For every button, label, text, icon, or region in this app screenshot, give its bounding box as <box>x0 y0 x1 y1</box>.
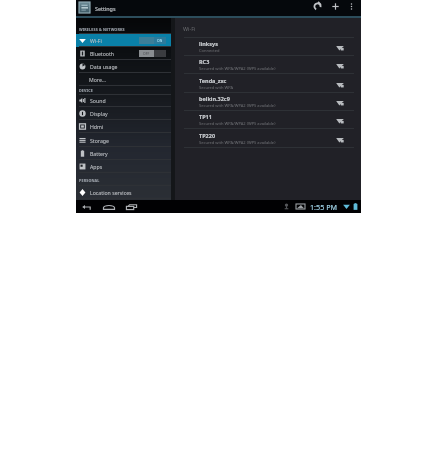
staticText: Settings <box>95 5 116 12</box>
staticText: Wi-Fi <box>90 37 102 44</box>
button[interactable]: Battery <box>76 147 171 160</box>
staticText: belkin.32c9 <box>199 95 230 102</box>
button[interactable]: More... <box>76 73 171 86</box>
staticText: Wi-Fi <box>183 25 196 32</box>
staticText: Location services <box>90 189 132 196</box>
button[interactable]: More options <box>345 0 358 13</box>
button[interactable]: belkin.32c9 <box>175 93 361 111</box>
button[interactable]: OFF <box>139 50 166 57</box>
button[interactable]: RC3 <box>175 56 361 74</box>
staticText: ON <box>157 38 163 43</box>
button[interactable]: Tenda_zxc <box>175 75 361 93</box>
staticText: Storage <box>90 137 109 144</box>
staticText: Tenda_zxc <box>199 77 227 84</box>
button[interactable]: Back <box>81 202 92 211</box>
staticText: Secured with WPA/WPA2 (WPS available) <box>199 103 276 109</box>
button[interactable]: Data usage <box>76 60 171 73</box>
button[interactable]: TP11 <box>175 111 361 129</box>
button[interactable]: Recent apps <box>125 202 138 211</box>
button[interactable]: Apps <box>76 160 171 173</box>
staticText: OFF <box>143 51 150 56</box>
staticText: linksys <box>199 40 218 47</box>
staticText: Sound <box>90 97 106 104</box>
staticText: Secured with WPA/WPA2 (WPS available) <box>199 140 276 146</box>
button[interactable]: Settings <box>79 2 90 13</box>
staticText: WIRELESS & NETWORKS <box>79 27 125 32</box>
staticText: Display <box>90 110 108 117</box>
button[interactable]: Display <box>76 107 171 120</box>
button[interactable]: Home <box>102 202 115 211</box>
staticText: PERSONAL <box>79 178 100 183</box>
staticText: Secured with WPA/WPA2 (WPS available) <box>199 121 276 127</box>
staticText: RC3 <box>199 58 210 65</box>
staticText: TP11 <box>199 113 212 120</box>
button[interactable]: Hdmi <box>76 120 171 133</box>
staticText: Secured with WPA <box>199 85 234 91</box>
button[interactable]: Bluetooth <box>76 47 171 60</box>
button[interactable]: Wi-Fi <box>76 34 171 47</box>
button[interactable]: Scan for networks <box>311 0 324 13</box>
staticText: 1:55 PM <box>310 202 337 212</box>
staticText: More... <box>89 76 106 83</box>
button[interactable]: Location services <box>76 186 171 199</box>
staticText: Bluetooth <box>90 50 115 57</box>
button[interactable]: linksys <box>175 38 361 56</box>
button[interactable]: Add network <box>329 0 342 13</box>
staticText: Apps <box>90 163 103 170</box>
staticText: DEVICE <box>79 88 93 93</box>
button[interactable]: ON <box>139 37 166 44</box>
staticText: Secured with WPA/WPA2 (WPS available) <box>199 66 276 72</box>
button[interactable]: Sound <box>76 94 171 107</box>
staticText: Hdmi <box>90 123 104 130</box>
button[interactable]: TP220 <box>175 130 361 148</box>
staticText: Data usage <box>90 63 118 70</box>
staticText: Battery <box>90 150 108 157</box>
button[interactable]: Storage <box>76 134 171 147</box>
staticText: Connected <box>199 48 220 54</box>
staticText: TP220 <box>199 132 216 139</box>
